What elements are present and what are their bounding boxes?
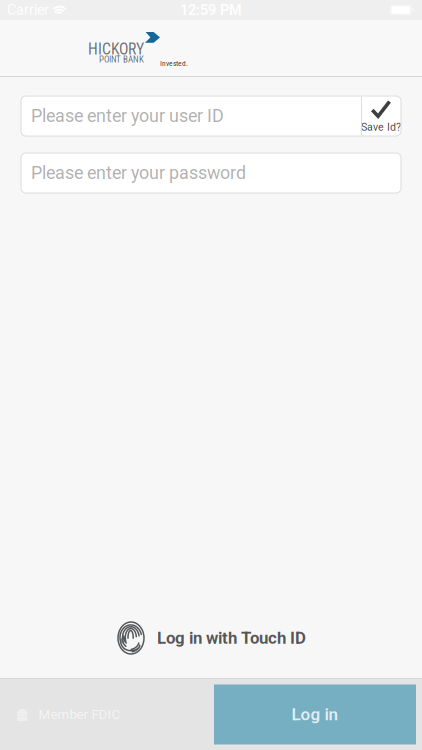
staticText: Please enter your password [31,162,246,183]
staticText: Please enter your user ID [31,105,224,126]
staticText: HICKORY [88,40,144,58]
staticText: Carrier [7,2,49,18]
button[interactable]: Save Id? [361,96,401,135]
staticText: 12:59 PM [180,2,242,18]
staticText: POINT BANK [99,54,144,65]
staticText: Log in [291,704,338,724]
staticText: Log in with Touch ID [157,628,306,648]
button[interactable]: Log in with Touch ID [116,620,306,656]
staticText: Member FDIC [38,707,120,722]
staticText: Invested. [160,59,188,68]
button[interactable]: Log in [214,684,416,744]
staticText: Save Id? [361,121,401,133]
